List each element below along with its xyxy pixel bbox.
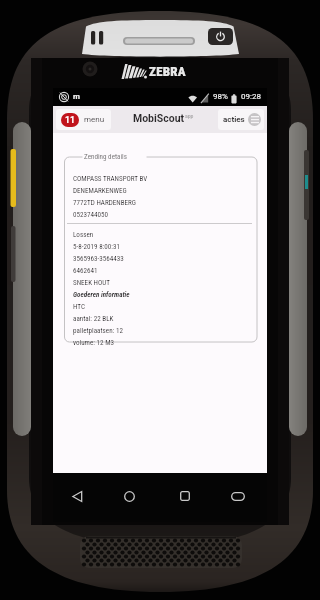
staticText: DENEMARKENWEG (73, 186, 127, 194)
button[interactable]: Back (66, 485, 88, 507)
staticText: app (185, 113, 194, 119)
staticText: palletplaatsen: 12 (73, 326, 123, 334)
staticText: Goederen informatie (73, 290, 130, 298)
staticText: m (73, 92, 80, 101)
staticText: 3565963-3564433 (73, 254, 124, 262)
staticText: 7772TD HARDENBERG (73, 198, 137, 206)
staticText: 6462641 (73, 266, 98, 274)
staticText: MobiScout (133, 112, 185, 124)
button[interactable]: acties (218, 109, 264, 130)
staticText: SNEEK HOUT (73, 278, 110, 286)
staticText: Lossen (73, 230, 94, 238)
staticText: COMPASS TRANSPORT BV (73, 174, 148, 182)
staticText: 0523744050 (73, 210, 109, 218)
staticText: aantal: 22 BLK (73, 314, 114, 322)
button[interactable]: Keyboard (227, 485, 249, 507)
staticText: 5-8-2019 8:00:31 (73, 242, 120, 250)
staticText: HTC (73, 302, 85, 310)
staticText: Zending details (84, 152, 127, 160)
staticText: 11 (65, 115, 75, 125)
button[interactable]: 11 (56, 109, 111, 130)
button[interactable]: Home (118, 485, 140, 507)
staticText: ZEBRA (149, 64, 186, 79)
staticText: menu (84, 115, 105, 124)
staticText: acties (223, 115, 245, 124)
staticText: 09:28 (241, 92, 261, 101)
button[interactable]: Recents (174, 485, 196, 507)
staticText: 98% (213, 92, 228, 101)
staticText: volume: 12 M3 (73, 338, 115, 346)
